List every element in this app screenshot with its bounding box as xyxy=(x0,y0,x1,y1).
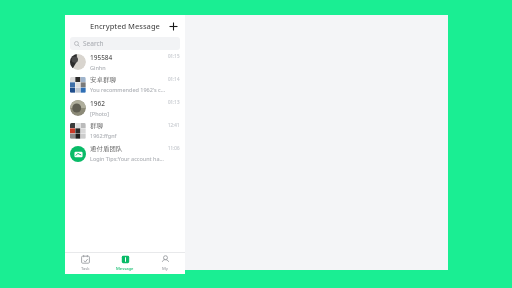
staticText: 1962:ffgnf xyxy=(90,132,117,139)
staticText: Encrypted Message xyxy=(90,21,160,31)
button[interactable]: 195584 xyxy=(65,50,185,73)
staticText: Login Tips:Your account has lo... xyxy=(90,155,166,162)
staticText: My xyxy=(162,266,168,272)
button[interactable]: Search xyxy=(70,37,180,50)
staticText: 195584 xyxy=(90,53,113,62)
button[interactable]: Task xyxy=(67,253,103,274)
staticText: Message xyxy=(116,266,134,272)
staticText: Search xyxy=(83,39,104,48)
staticText: [Photo] xyxy=(90,110,109,117)
button[interactable]: New chat xyxy=(166,19,180,33)
button[interactable]: My xyxy=(147,253,183,274)
button[interactable]: 通付盾团队 xyxy=(65,142,185,165)
button[interactable]: Message xyxy=(107,253,143,274)
button[interactable]: 安卓群聊 xyxy=(65,73,185,96)
button[interactable]: 群聊 xyxy=(65,119,185,142)
staticText: You recommended 1962's cont... xyxy=(90,86,166,93)
button[interactable]: 1962 xyxy=(65,96,185,119)
staticText: 11:06 xyxy=(168,145,180,151)
staticText: 1962 xyxy=(90,99,105,108)
staticText: Ginhn xyxy=(90,64,106,71)
staticText: 安卓群聊 xyxy=(90,76,116,84)
staticText: 通付盾团队 xyxy=(90,145,123,153)
staticText: 群聊 xyxy=(90,122,103,130)
staticText: 01:13 xyxy=(168,99,180,105)
staticText: Task xyxy=(81,266,90,272)
staticText: 01:14 xyxy=(168,76,180,82)
staticText: 01:15 xyxy=(168,53,180,59)
staticText: 12:41 xyxy=(168,122,180,128)
